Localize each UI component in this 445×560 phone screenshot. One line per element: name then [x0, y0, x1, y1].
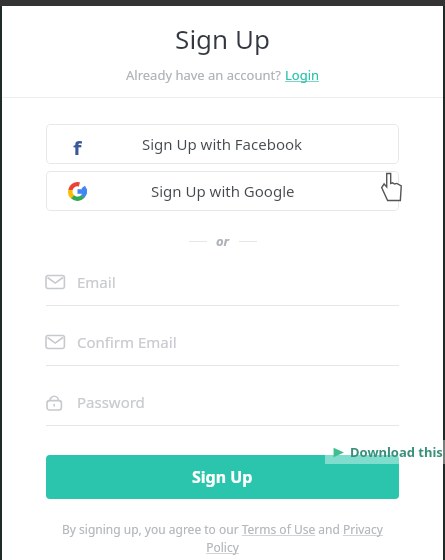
staticText: Already have an account?: [126, 66, 285, 84]
button[interactable]: Sign Up with Google: [46, 171, 399, 211]
button[interactable]: Email: [46, 272, 399, 306]
button[interactable]: Password: [46, 392, 399, 426]
staticText: Sign Up: [192, 466, 253, 488]
button[interactable]: Login: [285, 66, 320, 84]
staticText: Sign Up with Google: [151, 181, 295, 201]
staticText: Confirm Email: [77, 332, 177, 352]
staticText: Email: [77, 272, 116, 292]
button[interactable]: Confirm Email: [46, 332, 399, 366]
staticText: Sign Up with Facebook: [142, 134, 303, 154]
button[interactable]: By signing up, you agree to our Terms of…: [46, 521, 399, 556]
staticText: or: [216, 232, 230, 250]
staticText: Download this: [350, 443, 443, 461]
button[interactable]: Download this: [325, 440, 445, 464]
staticText: Login: [285, 66, 320, 84]
button[interactable]: f: [46, 124, 399, 164]
staticText: f: [73, 133, 82, 155]
staticText: Password: [77, 392, 145, 412]
button[interactable]: Sign Up: [46, 455, 399, 499]
staticText: Sign Up: [2, 21, 443, 56]
